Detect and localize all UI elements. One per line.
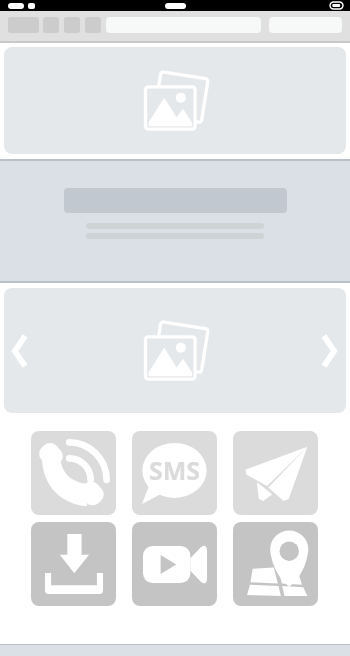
button[interactable]: Next bbox=[313, 327, 345, 375]
button[interactable]: Map bbox=[233, 522, 318, 606]
button[interactable]: SMS bbox=[132, 431, 217, 515]
button[interactable]: Previous bbox=[4, 327, 36, 375]
button[interactable] bbox=[4, 47, 346, 154]
button[interactable]: Download bbox=[31, 522, 116, 606]
button[interactable]: Call bbox=[31, 431, 116, 515]
button[interactable]: Send bbox=[233, 431, 318, 515]
button[interactable]: Video bbox=[132, 522, 217, 606]
staticText: SMS bbox=[149, 453, 201, 487]
